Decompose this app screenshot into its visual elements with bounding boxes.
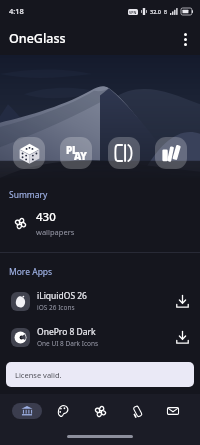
button[interactable]: License valid. <box>6 362 194 387</box>
button[interactable]: Home <box>12 403 42 419</box>
staticText: 32.0 <box>150 8 161 15</box>
button[interactable]: Wallpapers <box>155 137 187 169</box>
button[interactable]: Widgets <box>108 137 140 169</box>
staticText: 430 <box>36 209 56 225</box>
button[interactable]: Devices <box>122 403 152 419</box>
button[interactable]: Mail <box>158 403 188 419</box>
button[interactable]: Play <box>60 137 92 169</box>
button[interactable]: Download <box>171 290 193 312</box>
staticText: OnePro 8 Dark <box>37 326 96 338</box>
staticText: iOS 26 Icons <box>37 303 75 312</box>
button[interactable]: Wallpapers <box>85 403 115 419</box>
staticText: License valid. <box>15 370 62 380</box>
button[interactable]: OnePro 8 Dark <box>0 326 200 348</box>
button[interactable]: iLiquidOS 26 <box>0 290 200 312</box>
staticText: 4:18 <box>9 6 24 16</box>
staticText: VPN <box>129 10 137 15</box>
staticText: PL <box>66 143 78 157</box>
staticText: Summary <box>9 189 48 201</box>
staticText: iLiquidOS 26 <box>37 290 87 302</box>
staticText: OneGlass <box>9 30 66 47</box>
staticText: AY <box>74 149 87 163</box>
staticText: More Apps <box>9 266 53 278</box>
button[interactable]: Icon pack <box>13 137 45 169</box>
button[interactable]: Themes <box>48 403 78 419</box>
button[interactable]: Download <box>171 326 193 348</box>
staticText: wallpapers <box>36 227 75 237</box>
staticText: One UI 8 Dark Icons <box>37 339 99 348</box>
staticText: B <box>164 9 167 15</box>
button[interactable]: More options <box>170 24 200 54</box>
